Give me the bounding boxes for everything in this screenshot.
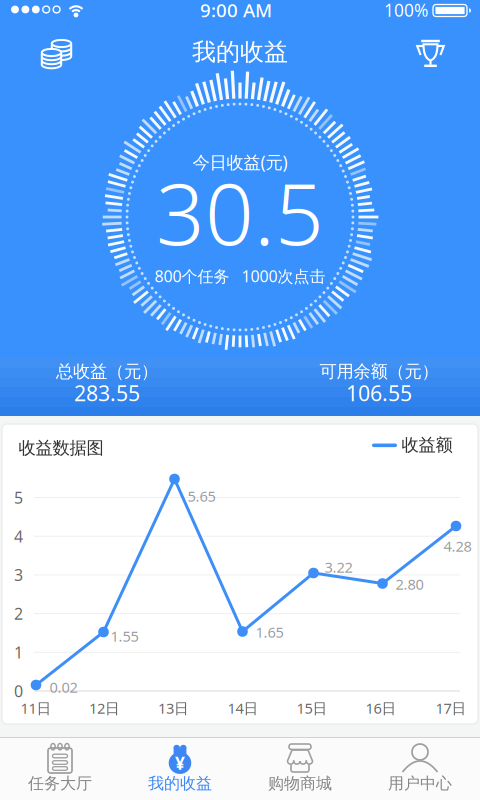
staticText: 100% bbox=[384, 0, 428, 21]
staticText: 11日 bbox=[20, 698, 51, 718]
staticText: 5.65 bbox=[187, 486, 215, 506]
staticText: 17日 bbox=[435, 698, 466, 718]
staticText: 用户中心 bbox=[388, 774, 452, 793]
staticText: 800个任务 1000次点击 bbox=[154, 265, 325, 287]
staticText: 任务大厅 bbox=[28, 774, 92, 793]
button[interactable]: 任务大厅 bbox=[0, 737, 120, 800]
staticText: 可用余额（元） bbox=[319, 361, 438, 382]
staticText: 0.02 bbox=[49, 677, 77, 697]
staticText: 我的收益 bbox=[192, 37, 288, 67]
button[interactable]: 收益明细 bbox=[35, 30, 79, 74]
staticText: ¥ bbox=[175, 751, 185, 774]
staticText: 14日 bbox=[227, 698, 258, 718]
staticText: 3.22 bbox=[324, 557, 352, 577]
staticText: 1.65 bbox=[255, 622, 283, 642]
button[interactable]: ¥ bbox=[120, 737, 240, 800]
staticText: 16日 bbox=[365, 698, 396, 718]
staticText: 今日收益(元) bbox=[192, 150, 287, 173]
staticText: 12日 bbox=[89, 698, 120, 718]
staticText: 4 bbox=[14, 526, 23, 547]
staticText: 收益数据图 bbox=[18, 437, 103, 459]
staticText: 我的收益 bbox=[148, 774, 212, 793]
staticText: 收益额 bbox=[401, 434, 452, 456]
staticText: 106.55 bbox=[346, 379, 412, 407]
staticText: 9:00 AM bbox=[200, 0, 272, 22]
staticText: 0 bbox=[14, 680, 23, 702]
staticText: 4.28 bbox=[443, 536, 471, 556]
staticText: 3 bbox=[14, 564, 23, 585]
button[interactable]: 排行榜 bbox=[409, 30, 453, 74]
button[interactable]: 购物商城 bbox=[240, 737, 360, 800]
staticText: 总收益（元） bbox=[56, 361, 158, 382]
staticText: 15日 bbox=[296, 698, 327, 718]
staticText: 5 bbox=[14, 487, 23, 508]
staticText: 13日 bbox=[158, 698, 189, 718]
staticText: 2 bbox=[14, 603, 23, 624]
staticText: 1.55 bbox=[110, 626, 138, 646]
staticText: 283.55 bbox=[74, 379, 140, 407]
staticText: 1 bbox=[14, 642, 23, 663]
button[interactable]: 用户中心 bbox=[360, 737, 480, 800]
staticText: 30.5 bbox=[156, 155, 324, 269]
staticText: 购物商城 bbox=[268, 774, 332, 793]
staticText: 2.80 bbox=[395, 574, 423, 594]
